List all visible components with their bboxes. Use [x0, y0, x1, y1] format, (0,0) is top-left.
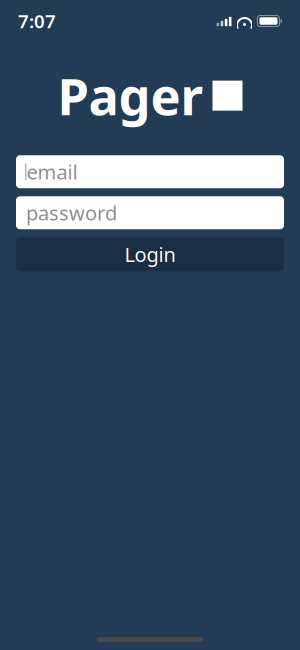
staticText: email: [26, 158, 77, 185]
staticText: Login: [124, 241, 175, 268]
button[interactable]: password: [16, 196, 284, 229]
staticText: 7:07: [18, 9, 56, 33]
staticText: password: [26, 199, 117, 226]
button[interactable]: Login: [16, 237, 284, 271]
staticText: Pager: [57, 62, 203, 129]
button[interactable]: email: [16, 155, 284, 188]
